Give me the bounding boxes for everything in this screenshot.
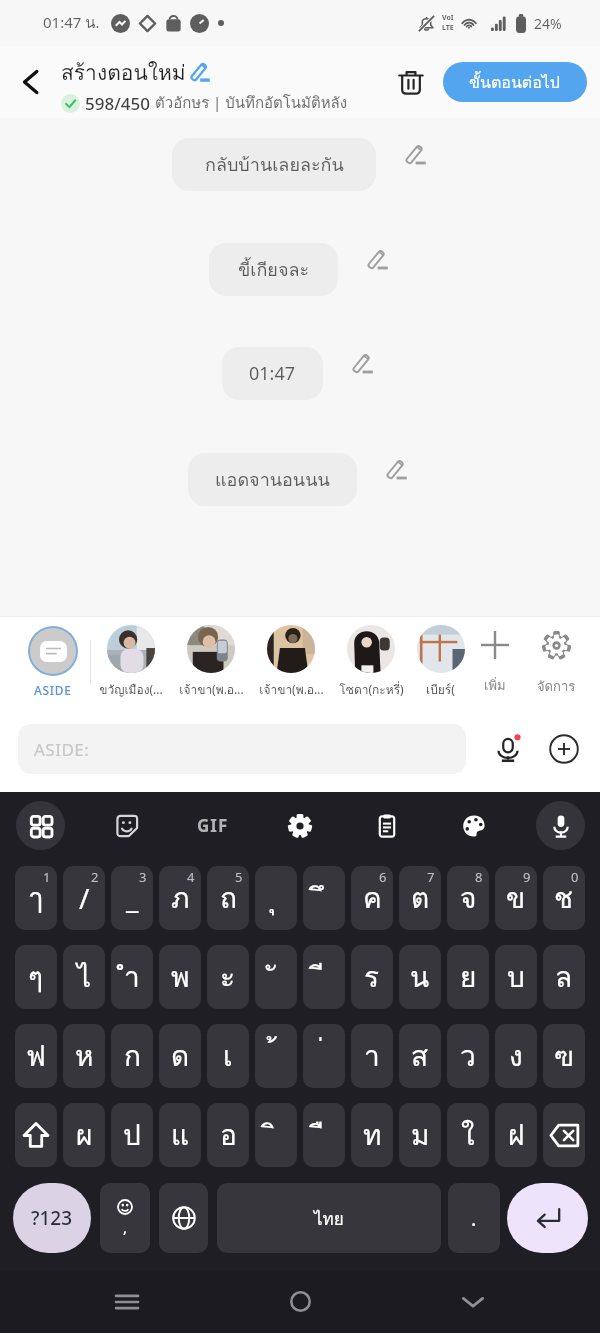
button[interactable]: เบียร์(: [411, 625, 470, 699]
button[interactable]: Change language: [159, 1183, 208, 1253]
button[interactable]: ด: [159, 1024, 201, 1088]
button[interactable]: Clipboard: [362, 801, 411, 850]
staticText: 5: [235, 868, 243, 886]
staticText: GIF: [197, 814, 229, 837]
button[interactable]: ป: [111, 1103, 153, 1167]
button[interactable]: อ: [207, 1103, 249, 1167]
button[interactable]: ขั้นตอนต่อไป: [443, 62, 587, 102]
button[interactable]: Shift: [15, 1103, 57, 1167]
button[interactable]: ก: [111, 1024, 153, 1088]
button[interactable]: Emoji and comma: [100, 1183, 150, 1253]
button[interactable]: เ: [207, 1024, 249, 1088]
button[interactable]: Recents: [101, 1270, 153, 1333]
button[interactable]: Apps: [16, 801, 65, 850]
button[interactable]: Back: [447, 1270, 499, 1333]
button[interactable]: ฟ: [15, 1024, 57, 1088]
button[interactable]: ช: [543, 866, 585, 930]
button[interactable]: ท: [351, 1103, 393, 1167]
button[interactable]: โซดา(กะหรี่): [331, 625, 411, 699]
button[interactable]: _: [111, 866, 153, 930]
button[interactable]: แอดจานอนนน: [188, 453, 357, 506]
button[interactable]: พ: [159, 945, 201, 1009]
button[interactable]: ขวัญเมือง(...: [91, 625, 171, 699]
button[interactable]: ง: [495, 1024, 537, 1088]
button[interactable]: ี: [303, 945, 345, 1009]
button[interactable]: Add: [542, 727, 586, 771]
button[interactable]: Edit: [362, 244, 394, 276]
button[interactable]: ASIDE: [28, 626, 78, 698]
staticText: ๅ: [29, 876, 43, 921]
button[interactable]: ิ: [255, 1103, 297, 1167]
button[interactable]: ไ: [63, 945, 105, 1009]
button[interactable]: ุ: [255, 866, 297, 930]
button[interactable]: Voice: [536, 801, 585, 850]
staticText: ขี้เกียจละ: [238, 255, 310, 284]
button[interactable]: กลับบ้านเลยละกัน: [172, 138, 376, 191]
staticText: ว: [460, 1034, 476, 1079]
button[interactable]: ถ: [207, 866, 249, 930]
button[interactable]: ั: [255, 945, 297, 1009]
button[interactable]: Delete: [388, 59, 434, 105]
button[interactable]: Backspace: [543, 1103, 585, 1167]
button[interactable]: จัดการ: [527, 631, 585, 697]
button[interactable]: Enter: [507, 1183, 588, 1253]
button[interactable]: ำ: [111, 945, 153, 1009]
button[interactable]: ข: [495, 866, 537, 930]
button[interactable]: ไทย: [217, 1183, 441, 1253]
staticText: ม: [411, 1113, 430, 1158]
button[interactable]: เจ้าขา(พ.อ...: [171, 625, 251, 699]
button[interactable]: ?123: [13, 1183, 91, 1253]
button[interactable]: เพิ่ม: [467, 631, 523, 696]
button[interactable]: ส: [399, 1024, 441, 1088]
button[interactable]: ะ: [207, 945, 249, 1009]
button[interactable]: ค: [351, 866, 393, 930]
button[interactable]: จ: [447, 866, 489, 930]
button[interactable]: ว: [447, 1024, 489, 1088]
staticText: บ: [507, 955, 525, 1000]
button[interactable]: Edit: [381, 454, 413, 486]
staticText: VoI: [442, 13, 454, 23]
button[interactable]: ร: [351, 945, 393, 1009]
button[interactable]: 01:47: [222, 347, 323, 400]
button[interactable]: Voice input: [486, 727, 530, 771]
staticText: ง: [509, 1034, 523, 1079]
button[interactable]: บ: [495, 945, 537, 1009]
button[interactable]: ม: [399, 1103, 441, 1167]
button[interactable]: ๆ: [15, 945, 57, 1009]
button[interactable]: ASIDE:: [18, 724, 466, 774]
staticText: เพิ่ม: [484, 675, 506, 696]
button[interactable]: ใ: [447, 1103, 489, 1167]
button[interactable]: ่: [303, 1024, 345, 1088]
button[interactable]: ฝ: [495, 1103, 537, 1167]
button[interactable]: า: [351, 1024, 393, 1088]
button[interactable]: Home: [274, 1270, 326, 1333]
button[interactable]: ต: [399, 866, 441, 930]
button[interactable]: น: [399, 945, 441, 1009]
button[interactable]: Sticker: [102, 801, 151, 850]
button[interactable]: ๅ: [15, 866, 57, 930]
button[interactable]: ึ: [303, 866, 345, 930]
button[interactable]: ล: [543, 945, 585, 1009]
staticText: ASIDE:: [34, 738, 90, 761]
button[interactable]: ขี้เกียจละ: [209, 243, 338, 296]
button[interactable]: Edit: [347, 348, 379, 380]
button[interactable]: GIF: [188, 801, 237, 850]
button[interactable]: ื: [303, 1103, 345, 1167]
button[interactable]: ภ: [159, 866, 201, 930]
button[interactable]: ผ: [63, 1103, 105, 1167]
button[interactable]: แ: [159, 1103, 201, 1167]
button[interactable]: /: [63, 866, 105, 930]
button[interactable]: เจ้าขา(พ.อ...: [251, 625, 331, 699]
button[interactable]: ห: [63, 1024, 105, 1088]
button[interactable]: Edit: [400, 139, 432, 171]
button[interactable]: Settings: [275, 801, 324, 850]
button[interactable]: ย: [447, 945, 489, 1009]
button[interactable]: ้: [255, 1024, 297, 1088]
staticText: ,: [123, 1217, 128, 1237]
button[interactable]: ฃ: [543, 1024, 585, 1088]
button[interactable]: .: [448, 1183, 500, 1253]
button[interactable]: Back: [6, 58, 54, 106]
staticText: สร้างตอนใหม่: [61, 56, 186, 89]
staticText: ไ: [77, 955, 92, 1000]
button[interactable]: Theme: [449, 801, 498, 850]
